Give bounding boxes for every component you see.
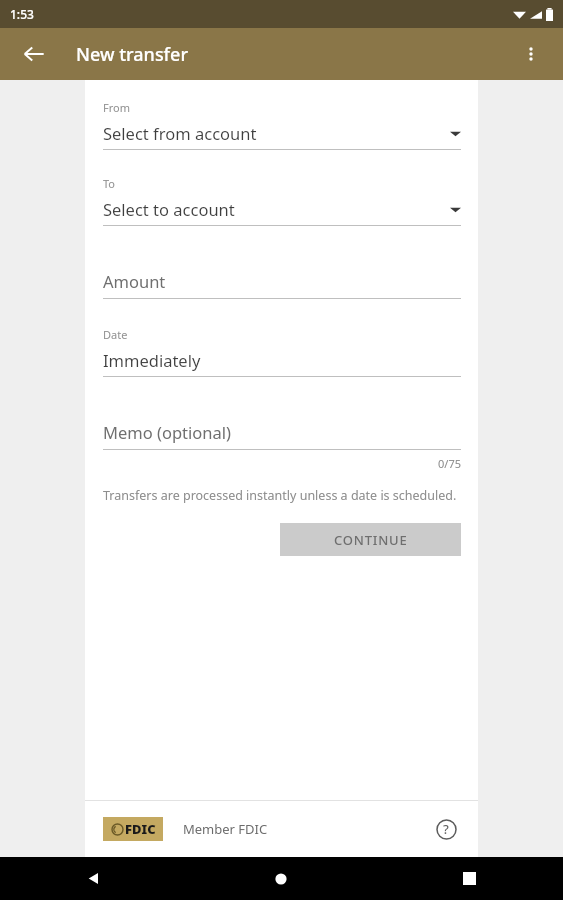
button[interactable]: From: [103, 100, 461, 150]
button[interactable]: Help: [428, 811, 464, 847]
staticText: To: [103, 176, 116, 191]
staticText: Member FDIC: [183, 820, 268, 838]
button[interactable]: Memo (optional): [103, 421, 461, 450]
button[interactable]: Back: [14, 34, 54, 74]
button[interactable]: More options: [511, 34, 551, 74]
staticText: FDIC: [125, 820, 156, 838]
button[interactable]: Recent apps: [375, 857, 563, 900]
staticText: 0/75: [103, 456, 461, 471]
button[interactable]: Date: [103, 327, 461, 377]
staticText: Select to account: [103, 198, 235, 220]
staticText: Transfers are processed instantly unless…: [103, 487, 457, 504]
button[interactable]: Amount: [103, 270, 461, 299]
button[interactable]: Home: [187, 857, 375, 900]
button[interactable]: CONTINUE: [280, 523, 461, 556]
staticText: Select from account: [103, 122, 257, 144]
staticText: From: [103, 100, 130, 115]
staticText: CONTINUE: [334, 531, 408, 549]
staticText: 1:53: [10, 6, 34, 22]
button[interactable]: Back: [0, 857, 187, 900]
staticText: Memo (optional): [103, 421, 231, 443]
staticText: ?: [443, 820, 449, 838]
staticText: Amount: [103, 270, 166, 292]
staticText: Date: [103, 327, 128, 342]
staticText: Immediately: [103, 349, 201, 371]
staticText: New transfer: [76, 42, 188, 67]
button[interactable]: To: [103, 176, 461, 226]
